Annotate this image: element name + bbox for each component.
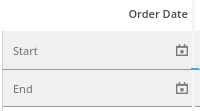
- button[interactable]: Open calendar picker for Start date: [172, 40, 192, 60]
- button[interactable]: Start: [3, 31, 200, 69]
- button[interactable]: Open calendar picker for End date: [172, 78, 192, 98]
- staticText: Start: [13, 43, 38, 58]
- staticText: End: [13, 81, 33, 96]
- button[interactable]: End: [3, 70, 200, 106]
- staticText: Order Date: [128, 6, 188, 21]
